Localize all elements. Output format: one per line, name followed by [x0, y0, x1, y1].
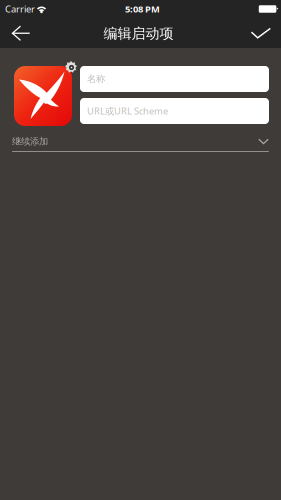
button[interactable]: Done — [239, 20, 281, 48]
button[interactable]: 继续添加 — [12, 135, 269, 152]
button[interactable]: 名称 — [80, 66, 269, 92]
button[interactable]: Choose icon — [0, 0, 78, 74]
staticText: 名称 — [87, 73, 105, 85]
button[interactable]: URL或URL Scheme — [80, 98, 269, 124]
staticText: URL或URL Scheme — [87, 105, 168, 117]
staticText: 编辑启动项 — [103, 25, 173, 42]
staticText: 5:08 PM — [125, 3, 160, 15]
staticText: 继续添加 — [12, 136, 48, 147]
button[interactable]: App icon — [0, 0, 72, 126]
staticText: Carrier — [5, 3, 35, 15]
button[interactable]: Back — [0, 20, 42, 48]
